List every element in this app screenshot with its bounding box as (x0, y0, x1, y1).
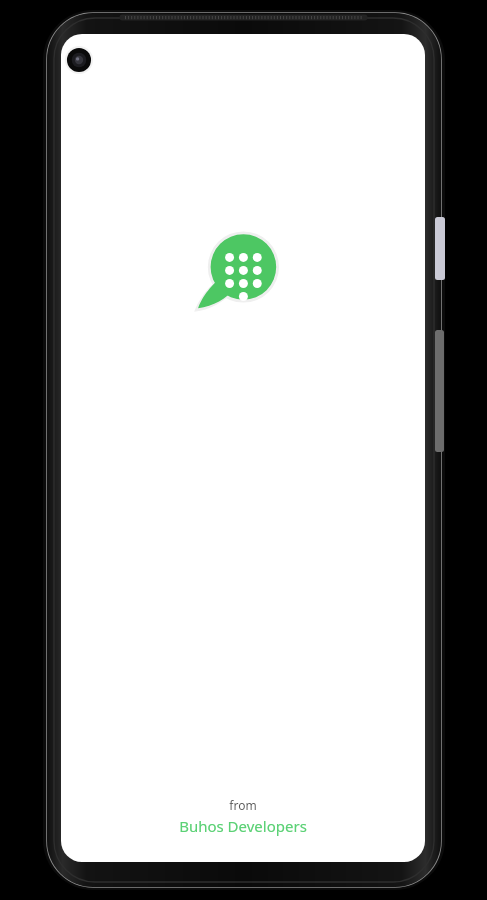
staticText: from (229, 797, 257, 813)
button[interactable]: from (61, 797, 425, 836)
staticText: Buhos Developers (179, 816, 307, 836)
button[interactable]: App logo (203, 229, 283, 309)
